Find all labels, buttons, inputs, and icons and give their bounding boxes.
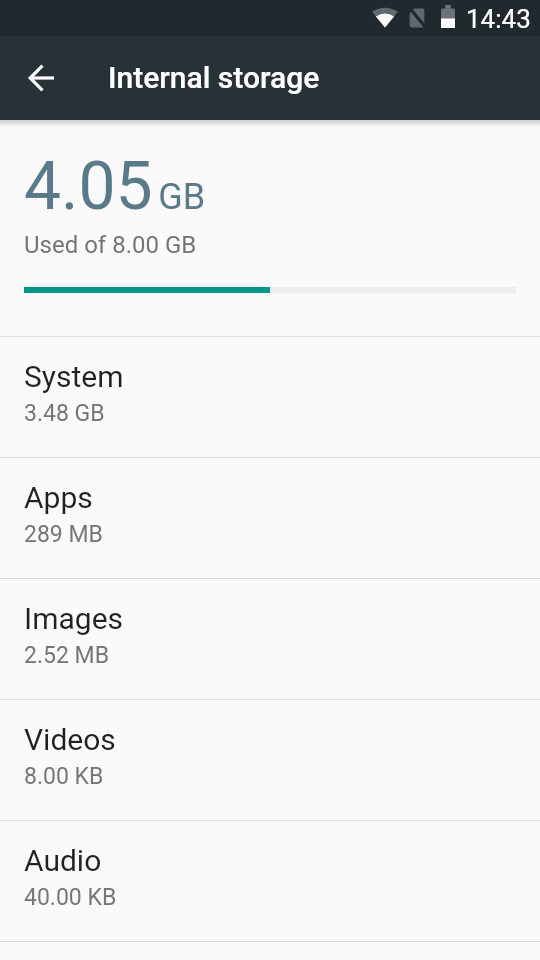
staticText: Apps bbox=[24, 480, 93, 515]
staticText: 3.48 GB bbox=[24, 400, 105, 427]
staticText: System bbox=[24, 359, 124, 394]
button[interactable]: Videos bbox=[0, 700, 540, 820]
button[interactable]: Images bbox=[0, 579, 540, 699]
staticText: Images bbox=[24, 601, 124, 636]
staticText: Used of 8.00 GB bbox=[24, 231, 197, 259]
button[interactable]: System bbox=[0, 337, 540, 457]
button[interactable]: Audio bbox=[0, 821, 540, 941]
button[interactable]: Apps bbox=[0, 458, 540, 578]
staticText: 40.00 KB bbox=[24, 884, 117, 911]
staticText: 289 MB bbox=[24, 521, 103, 548]
button[interactable] bbox=[0, 36, 84, 120]
staticText: 14:43 bbox=[466, 4, 531, 34]
staticText: Audio bbox=[24, 843, 102, 878]
staticText: Internal storage bbox=[108, 60, 320, 95]
staticText: 8.00 KB bbox=[24, 763, 104, 790]
staticText: Videos bbox=[24, 722, 116, 757]
staticText: 2.52 MB bbox=[24, 642, 109, 669]
staticText: 4.05 GB bbox=[24, 148, 206, 225]
